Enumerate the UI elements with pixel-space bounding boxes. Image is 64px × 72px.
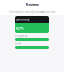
staticText: Progress xyxy=(15,34,27,38)
staticText: 82% xyxy=(16,25,24,31)
staticText: Review xyxy=(25,2,38,7)
staticText: Summary xyxy=(16,18,29,21)
staticText: Check your weekly summary below xyxy=(9,10,55,14)
staticText: Goal xyxy=(15,42,21,45)
